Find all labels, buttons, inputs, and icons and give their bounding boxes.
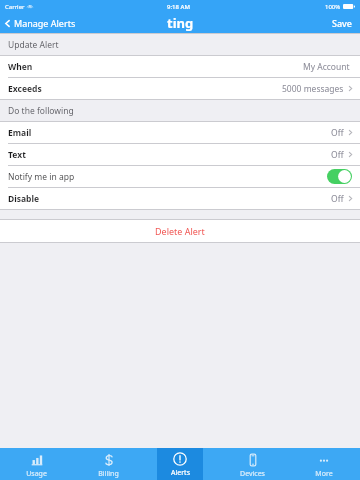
staticText: More: [315, 469, 333, 479]
button[interactable]: More: [288, 448, 360, 480]
button[interactable]: Text: [0, 144, 360, 165]
staticText: Manage Alerts: [14, 17, 76, 29]
button[interactable]: Email: [0, 122, 360, 143]
staticText: ting: [167, 14, 194, 32]
staticText: Off: [331, 193, 344, 205]
button[interactable]: Exceeds: [0, 78, 360, 99]
staticText: Off: [331, 149, 344, 161]
staticText: 100%: [325, 3, 341, 11]
staticText: Exceeds: [8, 83, 42, 95]
staticText: 9:18 AM: [167, 3, 190, 11]
staticText: Carrier: [5, 3, 25, 11]
button[interactable]: Disable: [0, 188, 360, 209]
staticText: Devices: [240, 469, 265, 479]
staticText: Usage: [26, 469, 47, 479]
button[interactable]: When: [0, 56, 360, 77]
button[interactable]: Manage Alerts: [0, 13, 84, 33]
staticText: 5000 messages: [282, 83, 344, 95]
button[interactable]: Usage: [0, 448, 72, 480]
staticText: Email: [8, 127, 32, 139]
staticText: Notify me in app: [8, 171, 75, 183]
staticText: Off: [331, 127, 344, 139]
staticText: When: [8, 61, 33, 73]
staticText: Do the following: [8, 105, 74, 117]
staticText: Save: [332, 17, 353, 29]
other: Notify me in app toggle, on: [327, 169, 352, 184]
staticText: Disable: [8, 193, 40, 205]
button[interactable]: Notify me in app: [0, 166, 360, 187]
staticText: Update Alert: [8, 39, 59, 51]
button[interactable]: Billing: [72, 448, 144, 480]
staticText: Alerts: [171, 468, 190, 478]
button[interactable]: Save: [325, 13, 360, 33]
staticText: Billing: [98, 469, 119, 479]
staticText: Delete Alert: [155, 225, 205, 237]
button[interactable]: Alerts: [144, 448, 216, 480]
staticText: My Account: [303, 61, 350, 73]
staticText: Text: [8, 149, 26, 161]
button[interactable]: Devices: [216, 448, 288, 480]
button[interactable]: Delete Alert: [0, 220, 360, 242]
